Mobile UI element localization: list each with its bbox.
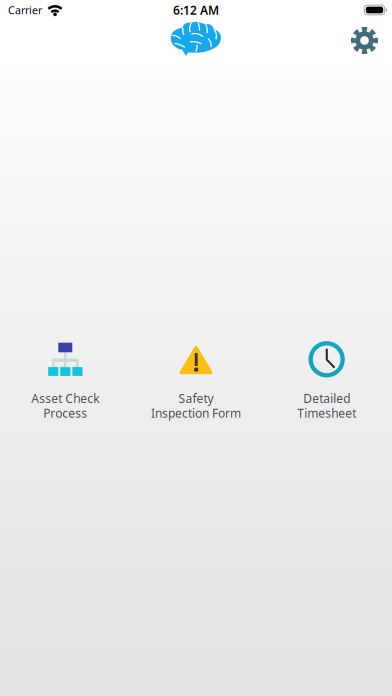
staticText: Carrier [8, 3, 42, 17]
staticText: Inspection Form [151, 405, 241, 421]
button[interactable]: Safety [131, 341, 261, 421]
button[interactable]: Settings [351, 20, 392, 70]
staticText: Detailed [303, 390, 350, 406]
button[interactable]: Asset Check [0, 341, 131, 421]
staticText: Asset Check [31, 390, 99, 406]
staticText: Process [43, 405, 87, 421]
staticText: Timesheet [297, 405, 356, 421]
staticText: 6:12 AM [173, 2, 219, 18]
staticText: Safety [178, 390, 213, 406]
button[interactable]: Detailed [261, 341, 392, 421]
